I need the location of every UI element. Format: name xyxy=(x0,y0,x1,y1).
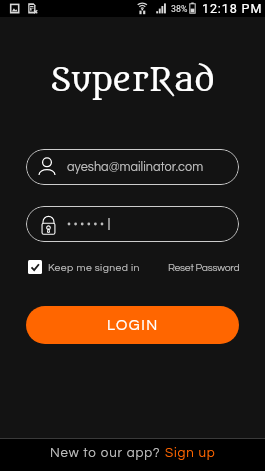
button[interactable]: New to our app? xyxy=(50,446,216,460)
staticText: New to our app? xyxy=(50,446,165,460)
button[interactable]: Reset Password xyxy=(168,262,240,273)
staticText: 12:18 PM xyxy=(202,1,263,16)
staticText: 38% xyxy=(171,4,188,14)
staticText: ayesha@mailinator.com xyxy=(67,161,204,174)
button[interactable]: Keep me signed in xyxy=(28,260,140,274)
staticText: Keep me signed in xyxy=(48,262,140,273)
staticText: Reset Password xyxy=(168,262,240,273)
button[interactable]: Password xyxy=(26,206,239,242)
staticText: Sign up xyxy=(165,446,216,460)
button[interactable]: Email xyxy=(26,149,239,185)
staticText: SuperRad xyxy=(0,61,265,100)
staticText: LOGIN xyxy=(107,318,159,333)
button[interactable]: LOGIN xyxy=(26,306,239,344)
